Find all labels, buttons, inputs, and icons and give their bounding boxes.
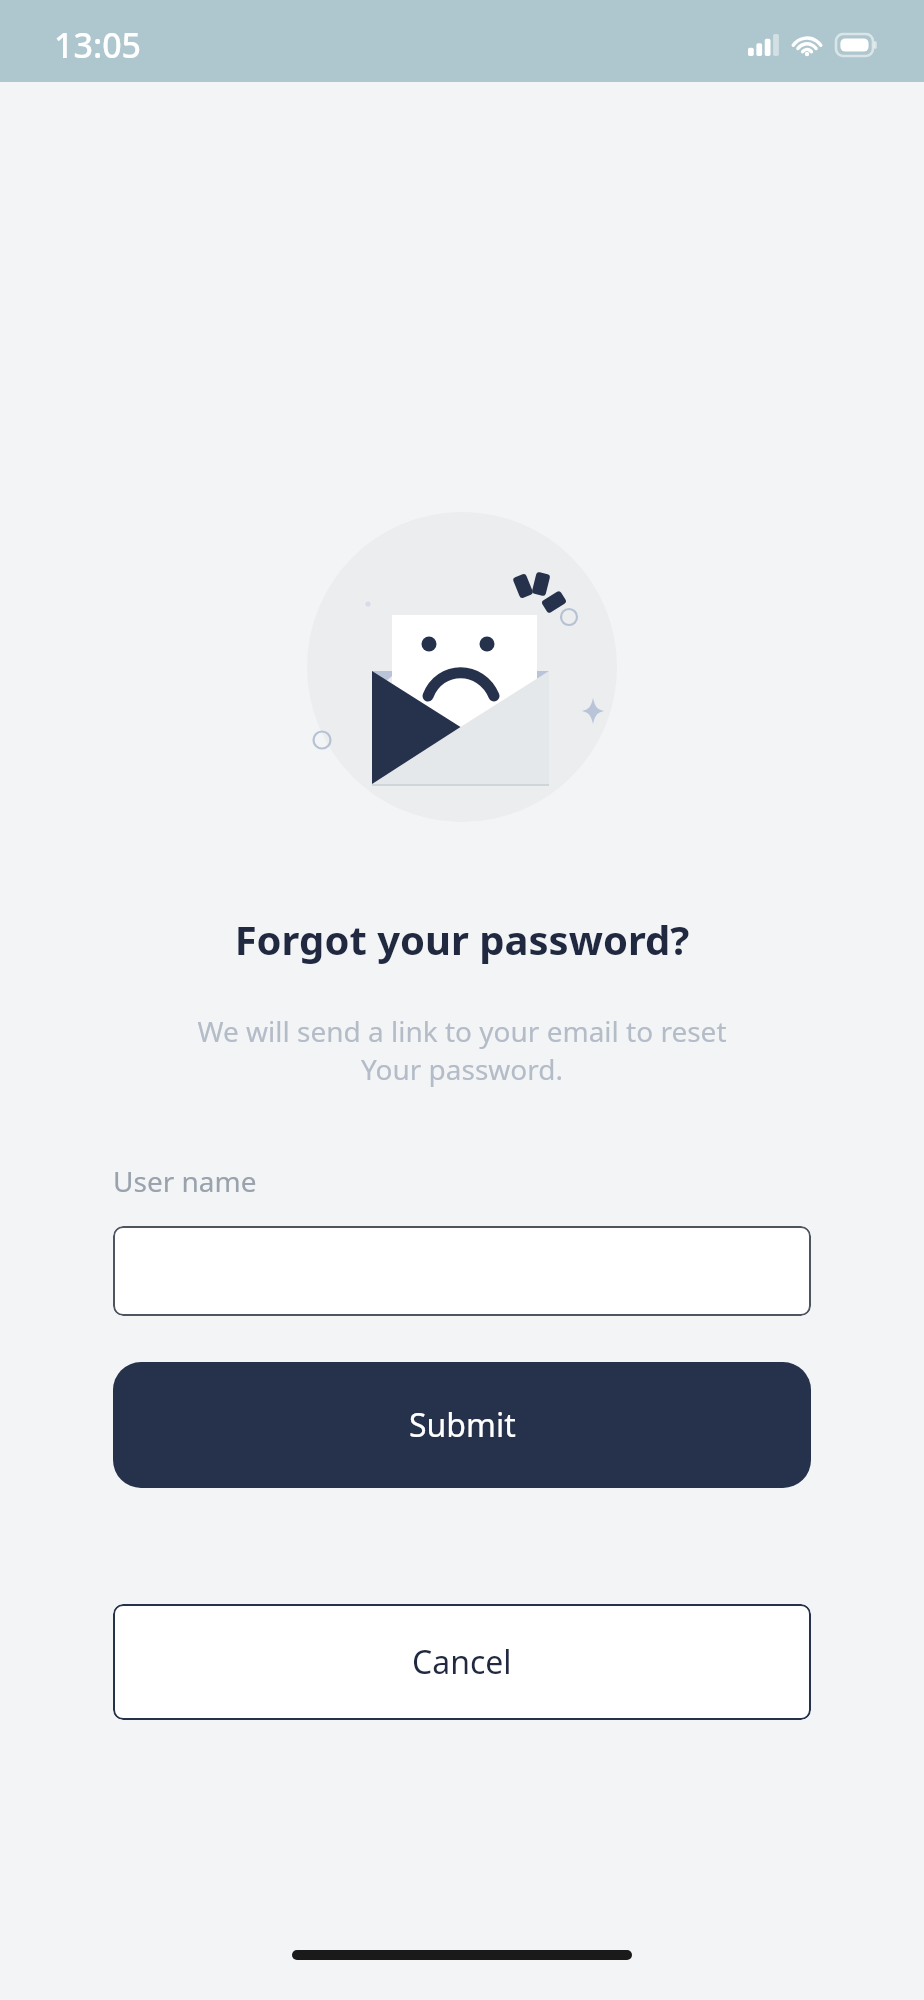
button[interactable]: Cancel (113, 1604, 811, 1720)
staticText: Cancel (412, 1640, 512, 1684)
button[interactable]: User name input (113, 1226, 811, 1316)
other: Sad letter illustration (297, 512, 627, 832)
staticText: User name (113, 1162, 257, 1200)
staticText: 13:05 (54, 22, 142, 68)
staticText: We will send a link to your email to res… (0, 1012, 924, 1088)
button[interactable]: Submit (113, 1362, 811, 1488)
staticText: Forgot your password? (0, 912, 924, 966)
staticText: Submit (409, 1403, 516, 1447)
